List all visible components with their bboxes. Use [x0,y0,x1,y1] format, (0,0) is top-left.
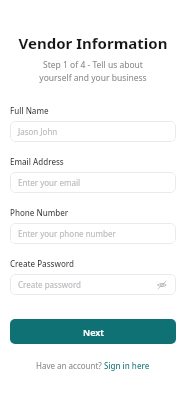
button[interactable]: Enter your email [10,172,176,193]
staticText: Enter your email [18,177,81,188]
staticText: Phone Number [10,207,69,218]
button[interactable]: Sign in here [104,360,150,371]
staticText: Create Password [10,258,74,269]
staticText: Vendor Information [10,33,176,53]
button[interactable]: Jason John [10,121,176,142]
staticText: Next [83,326,104,338]
staticText: Step 1 of 4 - Tell us about yourself and… [10,59,176,84]
staticText: Have an account? [36,360,104,371]
button[interactable]: Show password [156,279,168,291]
staticText: Sign in here [104,360,150,371]
staticText: Create password [18,279,81,290]
staticText: Jason John [18,126,58,137]
button[interactable]: Next [10,319,176,344]
staticText: Full Name [10,105,49,116]
button[interactable]: Create password [10,274,176,295]
button[interactable]: Enter your phone number [10,223,176,244]
staticText: Email Address [10,156,64,167]
staticText: Enter your phone number [18,228,116,239]
